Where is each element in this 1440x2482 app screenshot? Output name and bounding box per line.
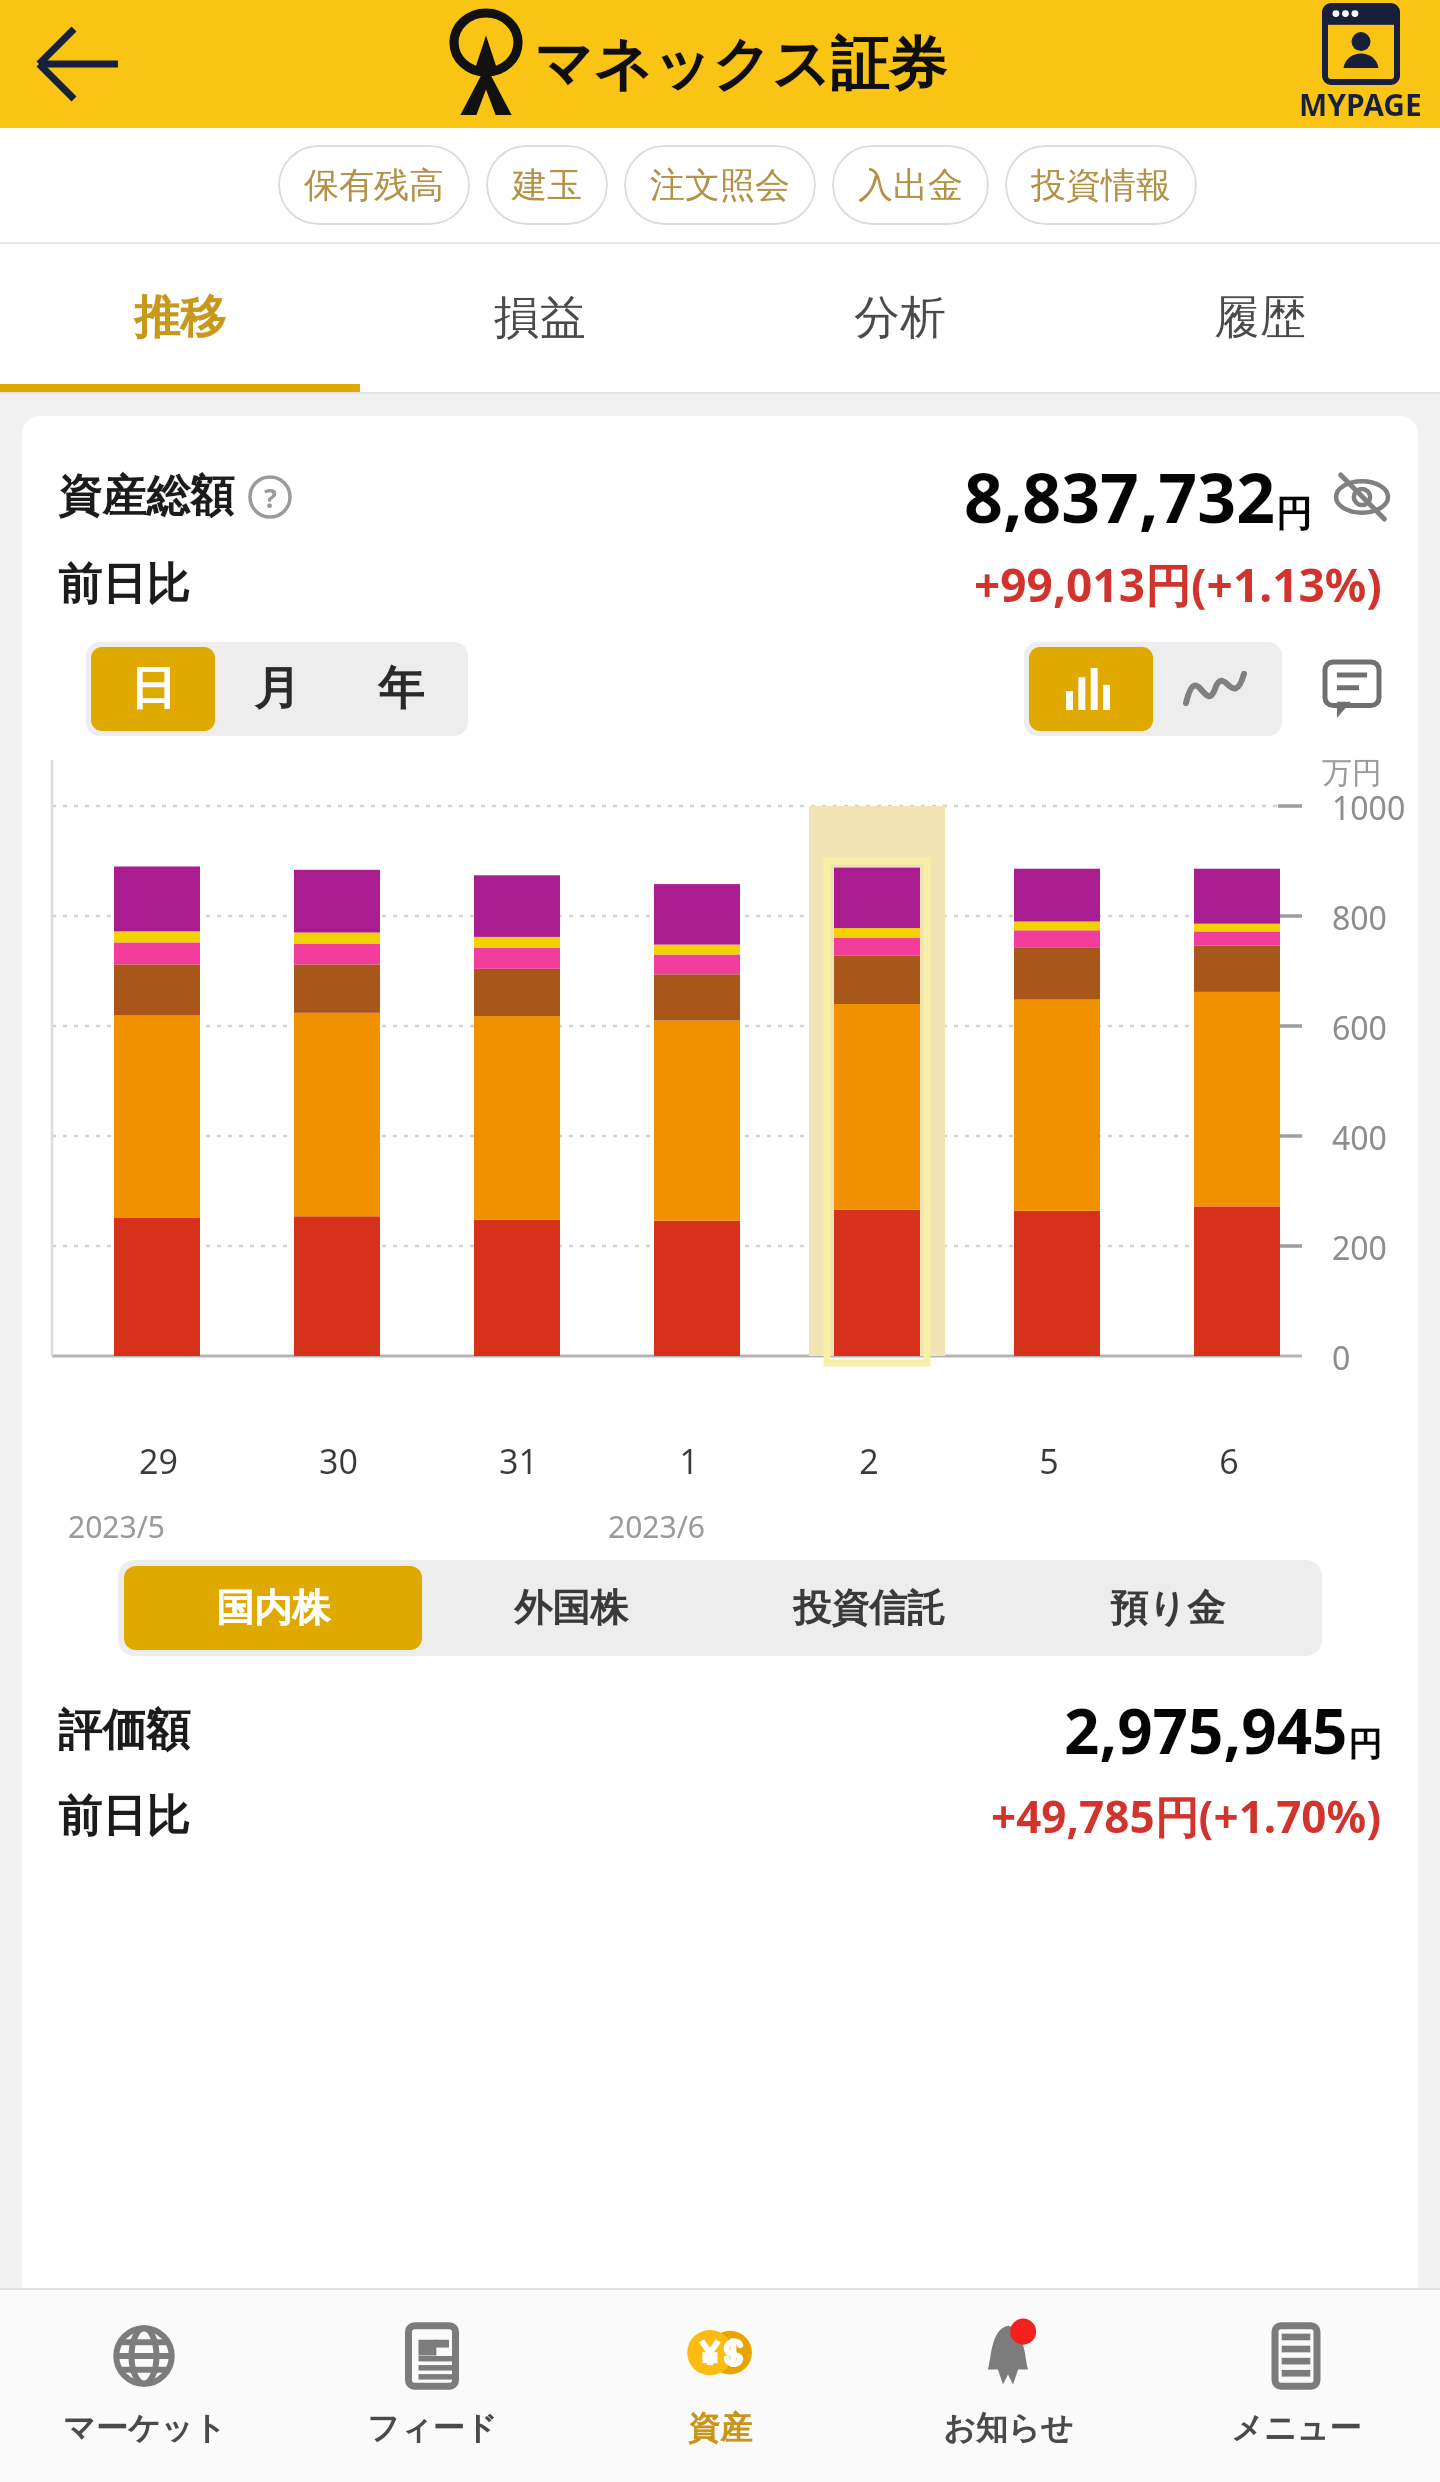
staticText: 400 [1332,1116,1387,1160]
staticText: 前日比 [58,1789,190,1844]
staticText: 履歴 [1214,289,1306,347]
staticText: ? [264,479,277,516]
staticText: 5 [1039,1438,1059,1484]
staticText: 円 [1348,1723,1382,1766]
button[interactable]: 履歴 [1080,244,1440,392]
staticText: 入出金 [858,163,963,207]
button[interactable]: Help [248,475,292,519]
button[interactable]: 資産 [576,2290,864,2482]
button[interactable]: 外国株 [422,1566,720,1650]
staticText: 2023/5 [68,1506,165,1547]
button[interactable]: マーケット [0,2290,288,2482]
staticText: マネックス証券 [534,28,947,101]
staticText: 29 [139,1438,178,1484]
staticText: 分析 [854,289,946,347]
button[interactable]: Back [16,4,136,124]
button[interactable]: Line chart [1153,647,1277,731]
staticText: 預り金 [1110,1584,1225,1632]
staticText: 2023/6 [608,1506,705,1547]
button[interactable]: 分析 [720,244,1080,392]
staticText: 2,975,945 [1064,1688,1348,1772]
staticText: 1000 [1332,786,1406,830]
staticText: お知らせ [943,2408,1074,2448]
staticText: 損益 [494,289,586,347]
staticText: 円 [1276,491,1312,536]
staticText: 月 [254,660,300,718]
staticText: 0 [1332,1336,1351,1380]
staticText: +49,785円(+1.70%) [991,1786,1382,1846]
button[interactable]: 建玉 [486,145,608,225]
staticText: 資産 [688,2408,752,2448]
button[interactable]: My Page [1299,4,1422,125]
staticText: 年 [378,660,424,718]
staticText: 推移 [134,289,226,347]
staticText: マーケット [63,2408,226,2448]
staticText: 投資信託 [793,1584,945,1632]
button[interactable]: フィード [288,2290,576,2482]
button[interactable]: 損益 [360,244,720,392]
button[interactable]: お知らせ [864,2290,1152,2482]
staticText: 6 [1219,1438,1239,1484]
button[interactable]: 推移 [0,244,360,392]
staticText: 800 [1332,896,1387,940]
staticText: 600 [1332,1006,1387,1050]
button[interactable]: Hide balance [1332,467,1392,527]
staticText: 30 [319,1438,358,1484]
staticText: MYPAGE [1299,84,1422,125]
button[interactable]: メニュー [1152,2290,1440,2482]
staticText: 資産総額 [58,469,234,524]
button[interactable]: 注文照会 [624,145,816,225]
button[interactable]: 投資信託 [720,1566,1018,1650]
button[interactable]: 月 [215,647,339,731]
button[interactable]: 国内株 [124,1566,422,1650]
button[interactable]: 入出金 [832,145,989,225]
staticText: メニュー [1231,2408,1362,2448]
button[interactable]: 日 [91,647,215,731]
button[interactable]: 保有残高 [278,145,470,225]
staticText: フィード [367,2408,498,2448]
staticText: 万円 [1322,754,1382,792]
button[interactable]: 預り金 [1018,1566,1316,1650]
button[interactable]: 投資情報 [1005,145,1197,225]
staticText: 保有残高 [304,163,444,207]
button[interactable]: 年 [339,647,463,731]
staticText: 1 [679,1438,699,1484]
staticText: 日 [130,660,176,718]
staticText: 31 [499,1438,538,1484]
staticText: +99,013円(+1.13%) [974,553,1382,616]
staticText: 国内株 [216,1584,330,1632]
button[interactable]: Bar chart [1029,647,1153,731]
staticText: 建玉 [512,163,582,207]
staticText: 2 [859,1438,879,1484]
staticText: 投資情報 [1031,163,1171,207]
staticText: 200 [1332,1226,1387,1270]
staticText: 前日比 [58,557,190,612]
staticText: 評価額 [58,1703,190,1758]
button[interactable]: Comment [1316,653,1388,725]
staticText: 注文照会 [650,163,790,207]
staticText: 外国株 [514,1584,628,1632]
staticText: 8,837,732 [964,450,1276,543]
